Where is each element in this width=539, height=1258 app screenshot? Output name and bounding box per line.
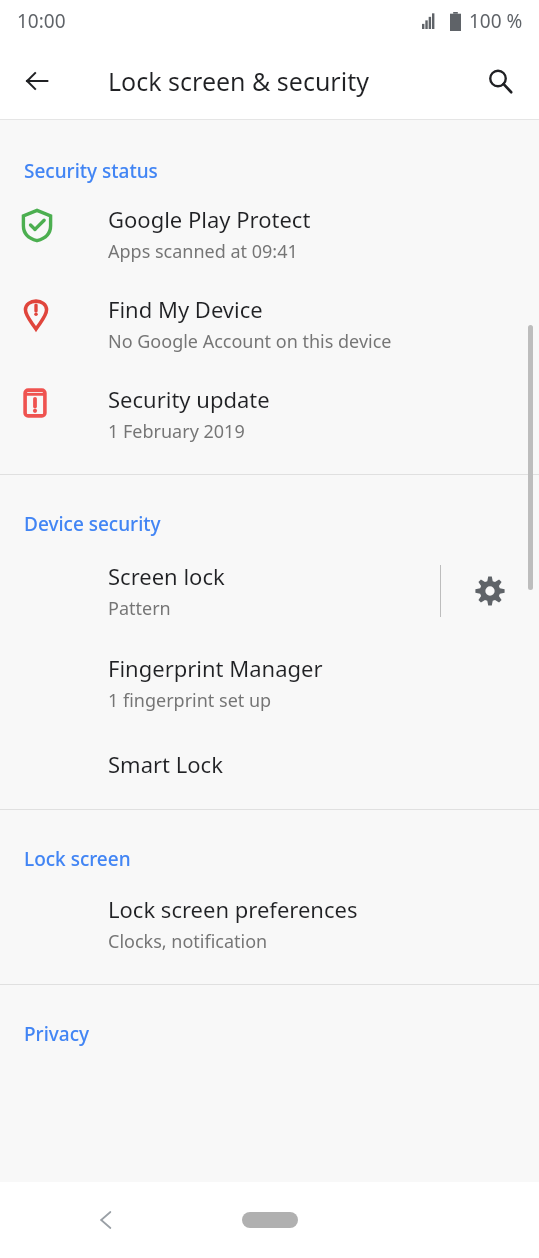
staticText: Security update [108, 384, 270, 414]
staticText: Lock screen [24, 846, 131, 872]
staticText: Device security [24, 511, 161, 537]
button[interactable]: Search [473, 54, 527, 108]
staticText: Apps scanned at 09:41 [108, 239, 298, 264]
button[interactable]: Lock screen preferences [0, 894, 539, 954]
staticText: Fingerprint Manager [108, 653, 323, 683]
button[interactable]: Screen lock settings [441, 559, 539, 623]
staticText: Screen lock [108, 561, 225, 591]
button[interactable]: Back [9, 53, 65, 109]
staticText: 10:00 [17, 8, 66, 34]
button[interactable]: Find My Device [0, 294, 539, 354]
staticText: 100 % [469, 8, 523, 34]
button[interactable]: Google Play Protect [0, 204, 539, 264]
staticText: No Google Account on this device [108, 329, 392, 354]
staticText: Google Play Protect [108, 204, 311, 234]
staticText: Lock screen & security [108, 64, 369, 98]
button[interactable]: Back [80, 1194, 132, 1246]
staticText: Find My Device [108, 294, 263, 324]
staticText: 1 February 2019 [108, 419, 245, 444]
button[interactable]: Screen lock [0, 559, 440, 623]
staticText: Clocks, notification [108, 929, 268, 954]
staticText: Smart Lock [108, 749, 223, 779]
button[interactable]: Security update [0, 384, 539, 444]
staticText: Privacy [24, 1021, 89, 1047]
staticText: 1 fingerprint set up [108, 688, 272, 713]
button[interactable]: Fingerprint Manager [0, 653, 539, 713]
staticText: Lock screen preferences [108, 894, 358, 924]
button[interactable]: Home [237, 1207, 303, 1233]
button[interactable]: Smart Lock [0, 749, 539, 779]
staticText: Pattern [108, 596, 171, 621]
staticText: Security status [24, 158, 158, 184]
